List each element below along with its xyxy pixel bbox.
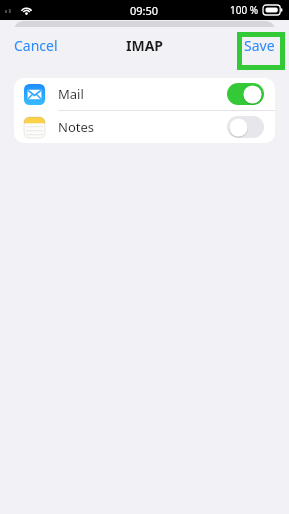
button[interactable]: Enabled	[227, 83, 264, 105]
staticText: 100 %	[230, 3, 259, 17]
staticText: Mail	[58, 85, 84, 103]
button[interactable]: Cancel	[0, 28, 72, 63]
staticText: Cancel	[14, 36, 58, 55]
button[interactable]: Notes	[14, 111, 275, 143]
button[interactable]: Disabled	[227, 116, 264, 138]
staticText: Save	[244, 36, 275, 55]
button[interactable]: Save	[230, 28, 289, 63]
staticText: 09:50	[130, 3, 159, 18]
button[interactable]: Mail	[14, 78, 275, 110]
staticText: Notes	[58, 118, 94, 136]
staticText: IMAP	[126, 36, 164, 55]
